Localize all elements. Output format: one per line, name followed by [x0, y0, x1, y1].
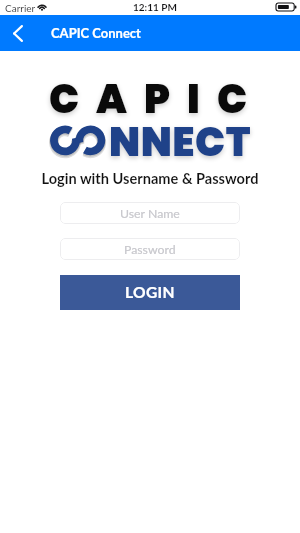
button[interactable]: User Name: [60, 202, 240, 224]
staticText: Password: [124, 242, 176, 257]
button[interactable]: LOGIN: [60, 275, 240, 310]
staticText: LOGIN: [125, 283, 175, 302]
staticText: Carrier: [5, 2, 36, 14]
staticText: CAPIC: [49, 71, 264, 127]
button[interactable]: Back: [0, 15, 36, 51]
staticText: 12:11 PM: [133, 1, 177, 13]
staticText: Login with Username & Password: [0, 170, 300, 188]
staticText: NNECT: [109, 114, 251, 170]
staticText: CAPIC Connect: [51, 25, 141, 41]
button[interactable]: Password: [60, 238, 240, 260]
staticText: User Name: [120, 206, 180, 221]
